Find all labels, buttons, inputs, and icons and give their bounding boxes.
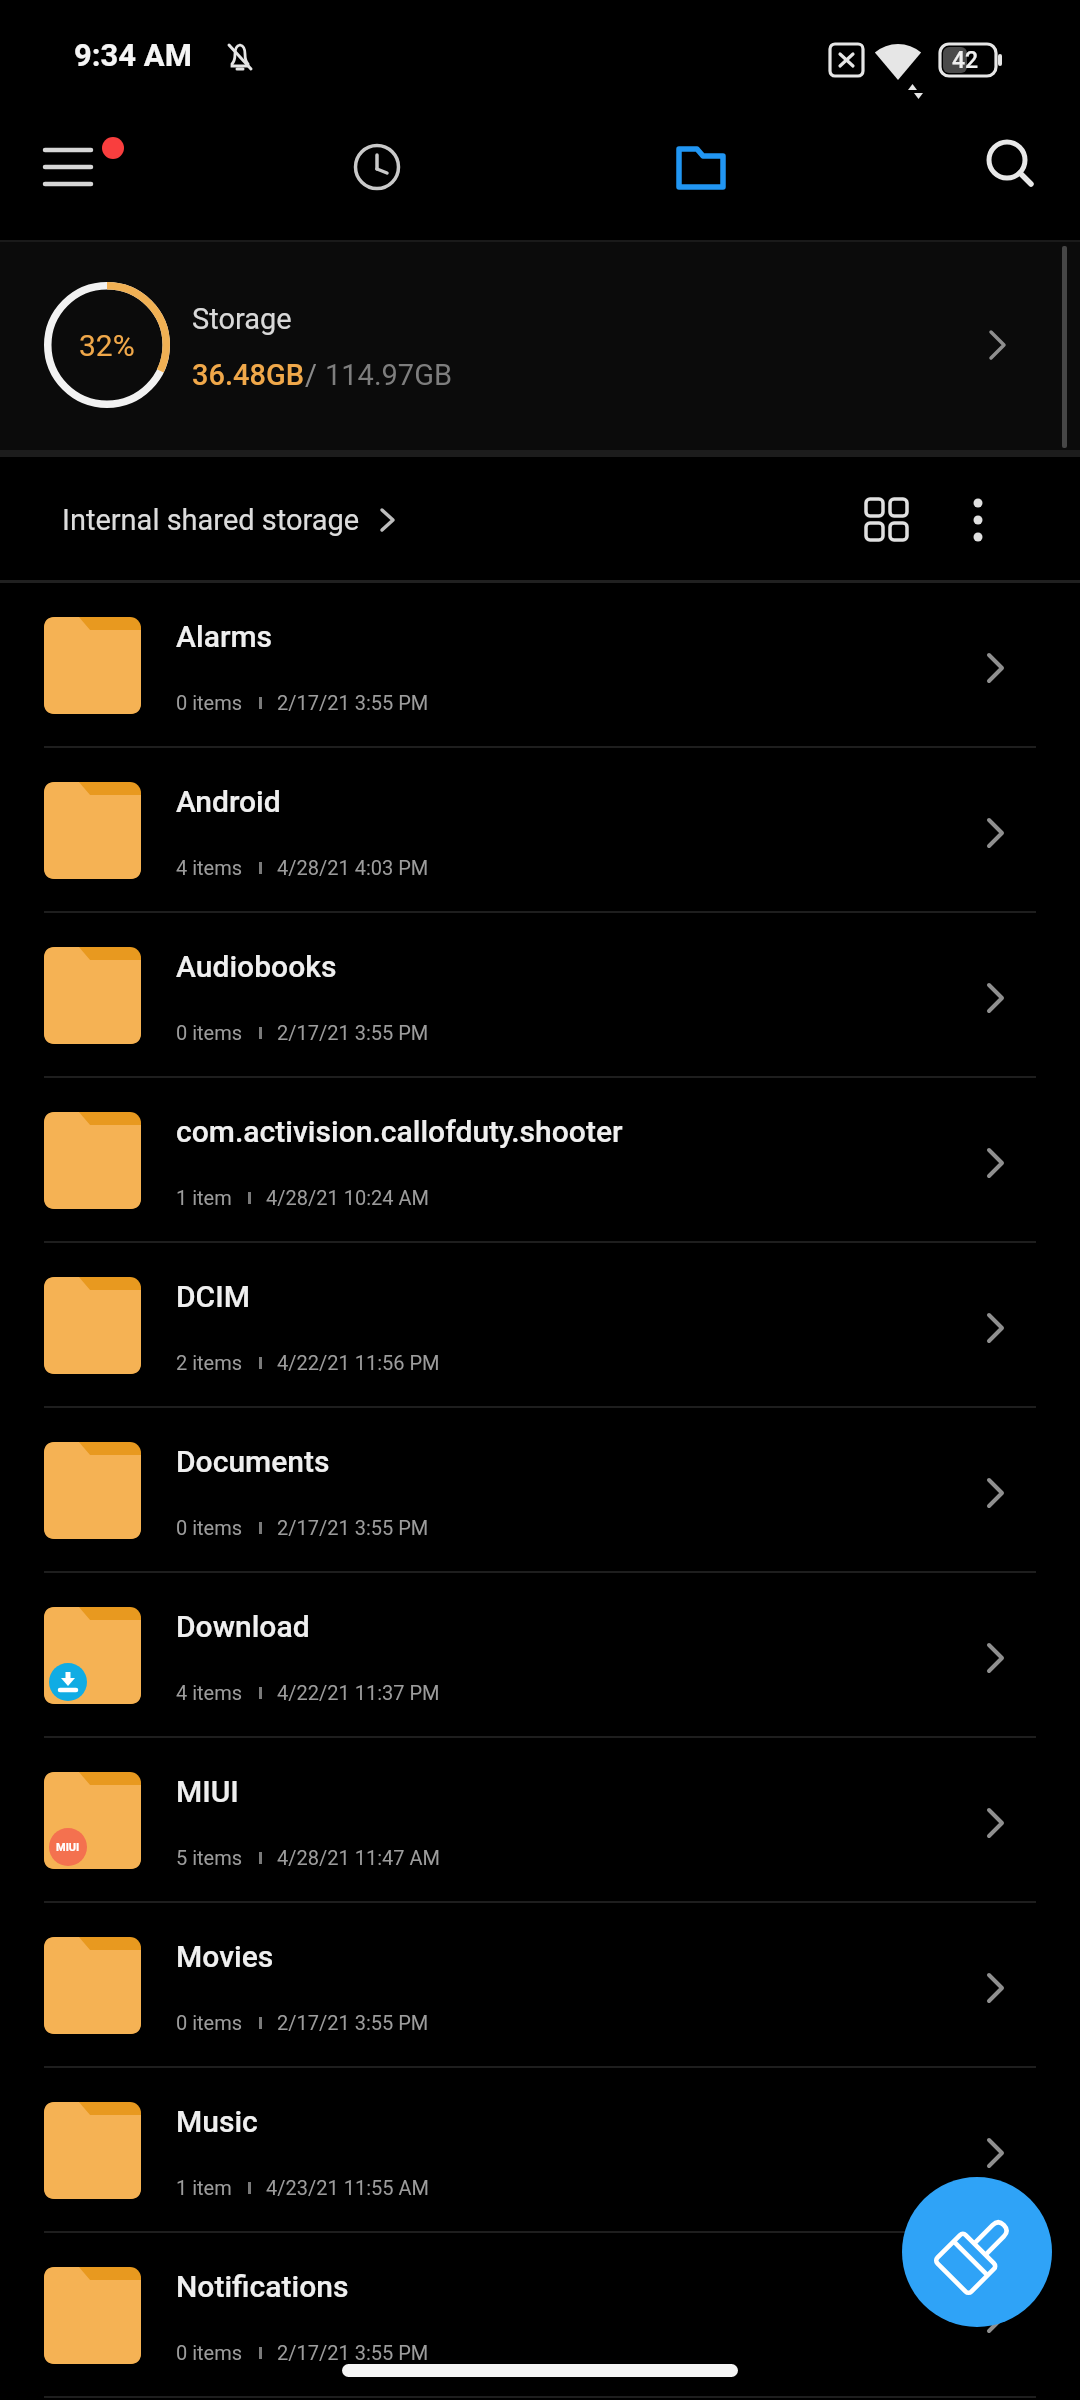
staticText: 0 items bbox=[176, 1516, 243, 1539]
staticText: 1 item bbox=[176, 1186, 232, 1209]
staticText: / bbox=[305, 358, 325, 392]
staticText: 9:34 AM bbox=[74, 37, 192, 73]
staticText: MIUI bbox=[176, 1774, 239, 1809]
button[interactable]: Audiobooks bbox=[0, 913, 1080, 1078]
staticText: 4/22/21 11:37 PM bbox=[277, 1681, 440, 1704]
staticText: MIUI bbox=[56, 1841, 80, 1854]
button[interactable] bbox=[661, 127, 741, 207]
button[interactable]: Movies bbox=[0, 1903, 1080, 2068]
staticText: 5 items bbox=[176, 1846, 243, 1869]
button[interactable]: Download bbox=[0, 1573, 1080, 1738]
staticText: 4/28/21 11:47 AM bbox=[277, 1846, 440, 1869]
staticText: 2/17/21 3:55 PM bbox=[277, 2011, 429, 2034]
button[interactable]: 32% bbox=[0, 240, 1080, 450]
staticText: 2/17/21 3:55 PM bbox=[277, 1021, 429, 1044]
staticText: 0 items bbox=[176, 2011, 243, 2034]
staticText: 2 items bbox=[176, 1351, 243, 1374]
staticText: Download bbox=[176, 1609, 310, 1644]
staticText: Movies bbox=[176, 1939, 274, 1974]
staticText: 4/22/21 11:56 PM bbox=[277, 1351, 440, 1374]
button[interactable]: Notifications bbox=[0, 2233, 1080, 2398]
button[interactable] bbox=[936, 478, 1020, 562]
button[interactable]: Alarms bbox=[0, 583, 1080, 748]
button[interactable]: Documents bbox=[0, 1408, 1080, 1573]
staticText: 36.48GB bbox=[192, 358, 305, 392]
staticText: Audiobooks bbox=[176, 949, 337, 984]
staticText: 2/17/21 3:55 PM bbox=[277, 1516, 429, 1539]
staticText: 0 items bbox=[176, 691, 243, 714]
staticText: Music bbox=[176, 2104, 258, 2139]
staticText: 2/17/21 3:55 PM bbox=[277, 691, 429, 714]
button[interactable]: DCIM bbox=[0, 1243, 1080, 1408]
staticText: 2/17/21 3:55 PM bbox=[277, 2341, 429, 2364]
staticText: 0 items bbox=[176, 2341, 243, 2364]
staticText: DCIM bbox=[176, 1279, 250, 1314]
staticText: 4/23/21 11:55 AM bbox=[266, 2176, 429, 2199]
staticText: 1 item bbox=[176, 2176, 232, 2199]
button[interactable]: MIUI bbox=[0, 1738, 1080, 1903]
button[interactable] bbox=[845, 478, 929, 562]
staticText: 42 bbox=[952, 47, 979, 74]
staticText: Documents bbox=[176, 1444, 330, 1479]
staticText: 4/28/21 4:03 PM bbox=[277, 856, 429, 879]
staticText: com.activision.callofduty.shooter bbox=[176, 1114, 623, 1149]
staticText: Android bbox=[176, 784, 281, 819]
button[interactable] bbox=[30, 130, 130, 210]
staticText: Storage bbox=[192, 302, 292, 336]
button[interactable]: com.activision.callofduty.shooter bbox=[0, 1078, 1080, 1243]
staticText: Notifications bbox=[176, 2269, 349, 2304]
button[interactable] bbox=[968, 123, 1052, 207]
staticText: 114.97GB bbox=[325, 358, 452, 392]
staticText: 32% bbox=[79, 328, 135, 363]
staticText: Alarms bbox=[176, 619, 273, 654]
staticText: 0 items bbox=[176, 1021, 243, 1044]
button[interactable]: Android bbox=[0, 748, 1080, 913]
button[interactable] bbox=[337, 127, 417, 207]
staticText: 4 items bbox=[176, 856, 243, 879]
staticText: 4/28/21 10:24 AM bbox=[266, 1186, 429, 1209]
button[interactable]: Internal shared storage bbox=[62, 457, 399, 583]
staticText: 4 items bbox=[176, 1681, 243, 1704]
button[interactable]: Music bbox=[0, 2068, 1080, 2233]
staticText: Internal shared storage bbox=[62, 503, 360, 537]
button[interactable] bbox=[902, 2177, 1052, 2327]
